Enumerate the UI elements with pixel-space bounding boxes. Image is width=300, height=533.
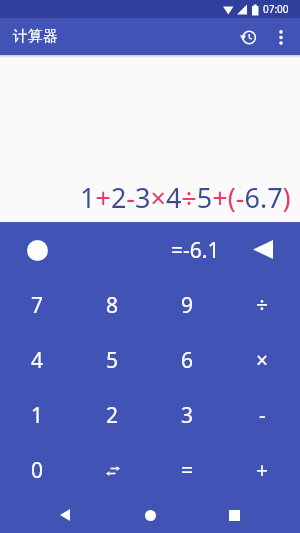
button[interactable]: 6	[150, 333, 225, 388]
staticText: 4	[31, 346, 44, 375]
button[interactable]: 3	[150, 388, 225, 443]
button[interactable]: 5	[75, 333, 150, 388]
button[interactable]: 2	[75, 388, 150, 443]
button[interactable]	[225, 222, 300, 278]
button[interactable]: +	[225, 443, 300, 498]
button[interactable]: 0	[0, 443, 75, 498]
button[interactable]: -	[225, 388, 300, 443]
staticText: +	[256, 456, 269, 485]
staticText: 6	[181, 346, 194, 375]
button[interactable]	[266, 22, 296, 52]
button[interactable]: 1	[0, 388, 75, 443]
staticText: 07:00	[263, 2, 289, 16]
staticText: 5	[106, 346, 119, 375]
staticText: 7	[31, 291, 44, 320]
button[interactable]	[219, 500, 249, 530]
staticText: 2	[106, 401, 119, 430]
button[interactable]: =	[150, 443, 225, 498]
button[interactable]: 4	[0, 333, 75, 388]
staticText: 0	[31, 456, 44, 485]
button[interactable]: ×	[225, 333, 300, 388]
staticText: =	[181, 456, 194, 485]
button[interactable]	[230, 19, 266, 55]
button[interactable]: 9	[150, 278, 225, 333]
button[interactable]	[75, 443, 150, 498]
staticText: 9	[181, 291, 194, 320]
button[interactable]: 7	[0, 278, 75, 333]
button[interactable]	[50, 500, 80, 530]
staticText: 计算器	[13, 27, 58, 46]
staticText: ÷	[256, 291, 269, 320]
button[interactable]: 8	[75, 278, 150, 333]
staticText: 3	[181, 401, 194, 430]
button[interactable]	[0, 222, 75, 278]
staticText: 1	[31, 401, 44, 430]
staticText: ×	[256, 346, 269, 375]
staticText: 8	[106, 291, 119, 320]
button[interactable]: ÷	[225, 278, 300, 333]
staticText: 1+2-3×4÷5+(-6.7)	[80, 179, 291, 216]
staticText: -	[259, 401, 266, 430]
staticText: =-6.1	[171, 236, 220, 265]
button[interactable]	[135, 500, 165, 530]
